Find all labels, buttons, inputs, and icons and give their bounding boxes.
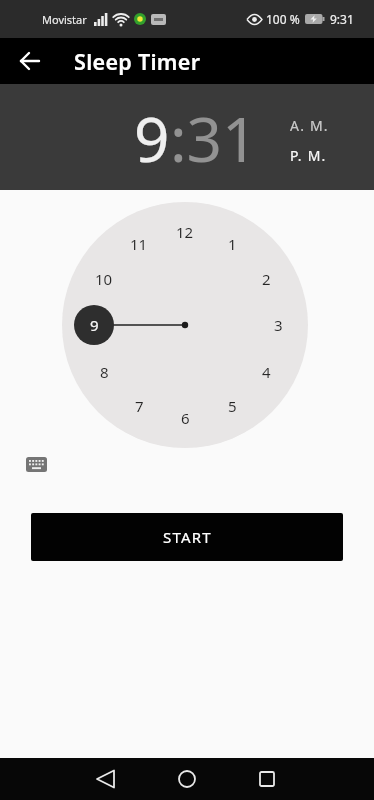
button[interactable]: 8	[88, 356, 120, 388]
staticText: 8	[100, 362, 109, 382]
staticText: 100 %	[266, 11, 300, 27]
button[interactable]: 2	[250, 263, 282, 295]
staticText: 6	[181, 408, 190, 428]
staticText: :31	[170, 96, 258, 180]
button[interactable]	[19, 450, 53, 478]
button[interactable]	[84, 758, 126, 800]
staticText: 12	[176, 222, 194, 242]
button[interactable]: 9	[78, 309, 110, 341]
staticText: Movistar	[42, 12, 87, 27]
staticText: Sleep Timer	[74, 47, 201, 76]
button[interactable]: P. M.	[290, 146, 327, 165]
button[interactable]: 11	[123, 228, 155, 260]
button[interactable]	[8, 39, 52, 83]
button[interactable]: A. M.	[290, 116, 329, 135]
staticText: 9:31	[330, 11, 354, 27]
staticText: 11	[130, 234, 148, 254]
staticText: 9	[134, 96, 170, 180]
button[interactable]	[246, 758, 288, 800]
button[interactable]: 10	[88, 263, 120, 295]
button[interactable]: 7	[123, 390, 155, 422]
staticText: 4	[262, 362, 271, 382]
staticText: 5	[228, 396, 237, 416]
button[interactable]	[166, 758, 208, 800]
button[interactable]: 4	[250, 356, 282, 388]
staticText: 7	[135, 396, 144, 416]
button[interactable]: 6	[169, 402, 201, 434]
button[interactable]: 5	[216, 390, 248, 422]
button[interactable]: 3	[262, 309, 294, 341]
button[interactable]: 12	[169, 216, 201, 248]
staticText: 9	[90, 315, 99, 335]
staticText: 1	[228, 234, 237, 254]
button[interactable]: 1	[216, 228, 248, 260]
staticText: 3	[274, 315, 283, 335]
staticText: START	[163, 527, 212, 547]
staticText: 10	[95, 269, 113, 289]
button[interactable]: START	[31, 513, 343, 561]
staticText: 2	[262, 269, 271, 289]
